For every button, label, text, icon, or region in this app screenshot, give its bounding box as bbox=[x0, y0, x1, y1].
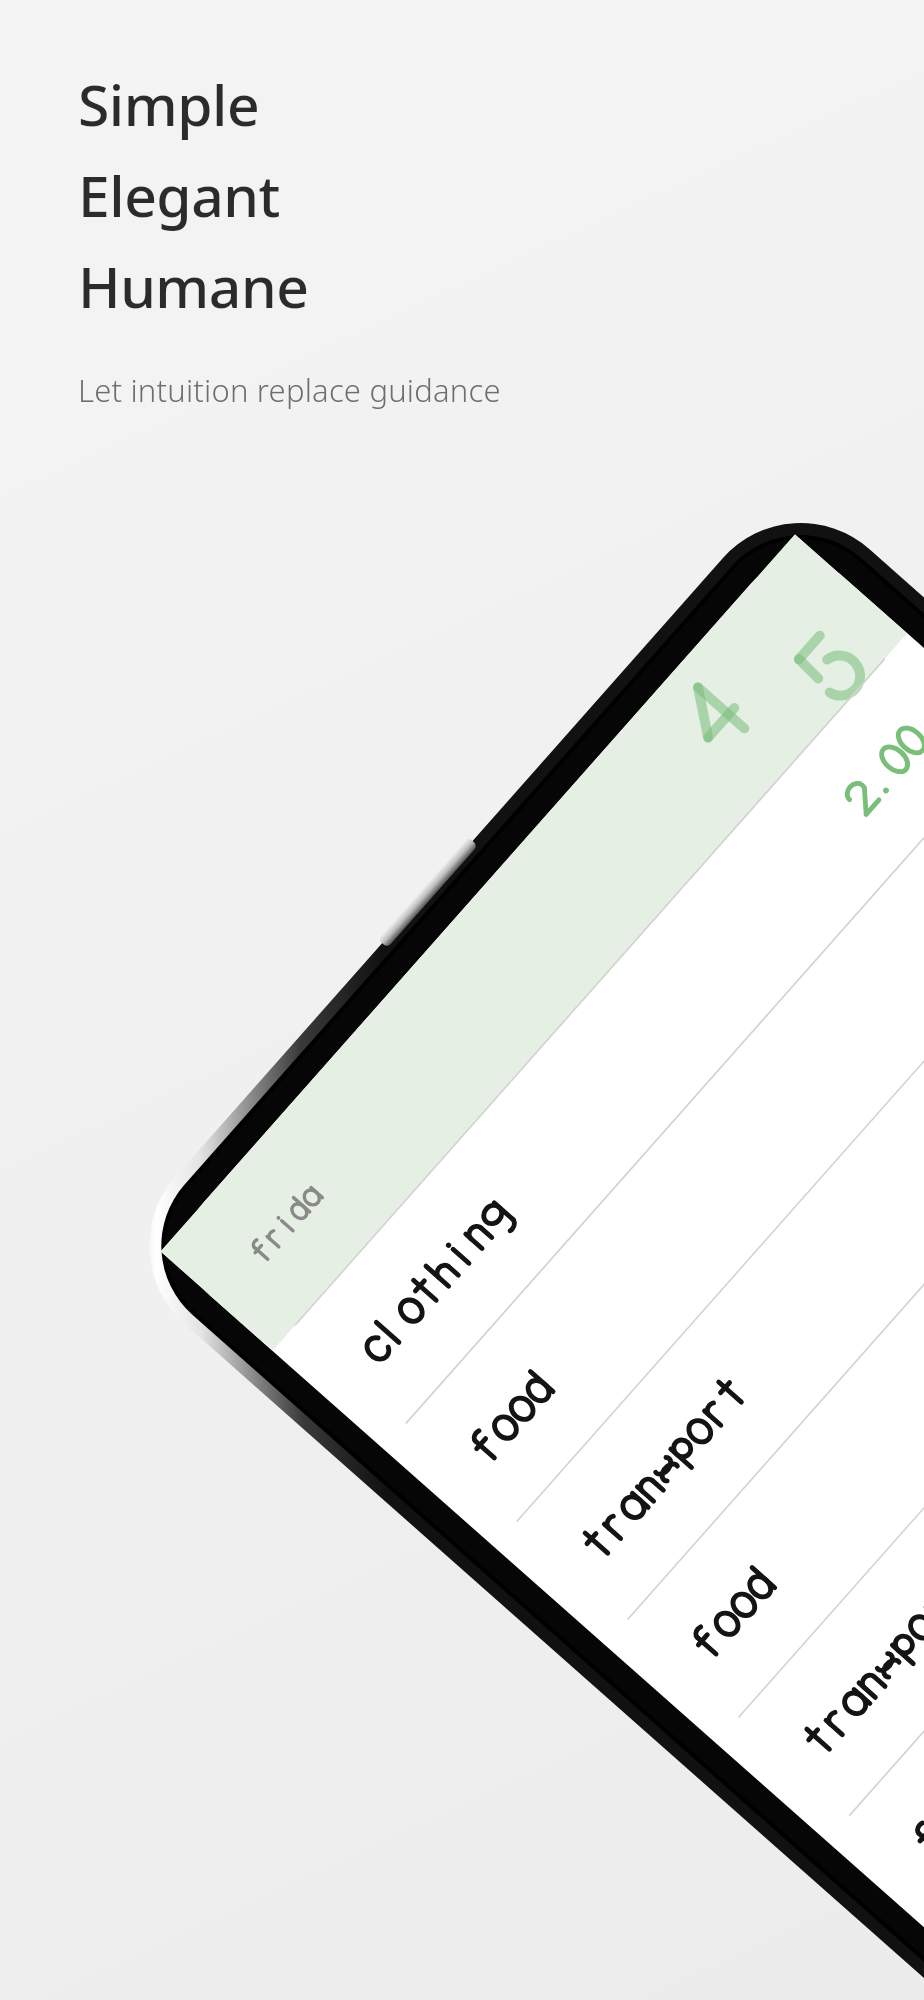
staticText: Let intuition replace guidance bbox=[78, 369, 501, 411]
staticText: Simple bbox=[78, 65, 260, 143]
staticText: Elegant bbox=[78, 156, 280, 234]
staticText: Humane bbox=[78, 247, 309, 325]
button[interactable]: Expenses app preview bbox=[0, 0, 924, 2000]
